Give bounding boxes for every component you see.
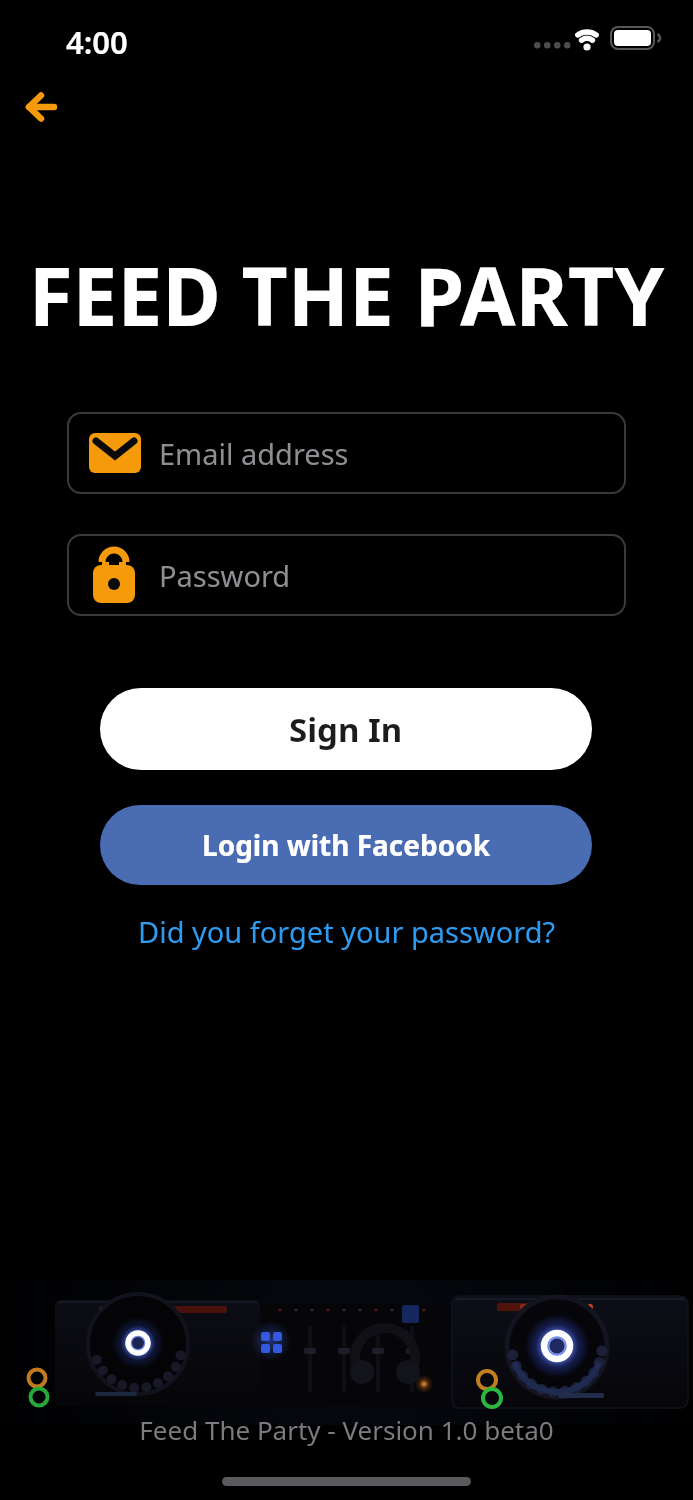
button[interactable]: Did you forget your password? xyxy=(138,912,556,951)
staticText: Password xyxy=(159,556,291,595)
button[interactable]: Password xyxy=(67,534,626,616)
button[interactable] xyxy=(16,85,68,131)
staticText: FEED THE PARTY xyxy=(0,240,693,349)
staticText: Feed The Party - Version 1.0 beta0 xyxy=(0,1412,693,1447)
staticText: Login with Facebook xyxy=(202,826,491,864)
button[interactable]: Sign In xyxy=(100,688,592,770)
button[interactable]: Email address xyxy=(67,412,626,494)
staticText: Sign In xyxy=(289,707,403,752)
staticText: Email address xyxy=(159,434,349,473)
staticText: 4:00 xyxy=(66,21,128,63)
button[interactable]: Login with Facebook xyxy=(100,805,592,885)
